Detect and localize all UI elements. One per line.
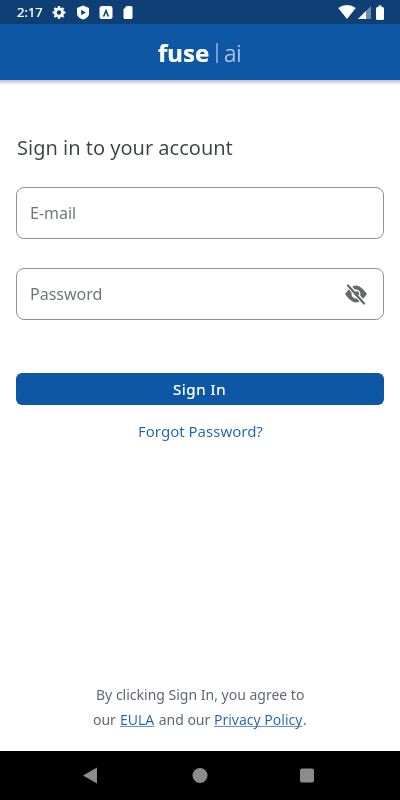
staticText: our — [93, 710, 120, 729]
staticText: Sign in to your account — [17, 134, 233, 161]
staticText: Privacy Policy — [214, 710, 303, 729]
button[interactable]: E-mail — [16, 187, 384, 239]
staticText: By clicking Sign In, you agree to — [96, 685, 305, 704]
button[interactable] — [267, 751, 400, 800]
staticText: E-mail — [30, 202, 77, 224]
staticText: ai — [224, 37, 242, 68]
staticText: Forgot Password? — [138, 421, 263, 441]
button[interactable]: Privacy Policy — [214, 710, 303, 729]
button[interactable] — [0, 751, 134, 800]
staticText: EULA — [120, 710, 155, 729]
staticText: Sign In — [173, 379, 227, 399]
staticText: fuse — [158, 36, 210, 69]
staticText: Password — [30, 283, 103, 305]
button[interactable]: Forgot Password? — [138, 421, 263, 441]
staticText: and our — [155, 710, 214, 729]
button[interactable] — [344, 282, 368, 306]
staticText: 2:17 — [17, 3, 43, 21]
button[interactable] — [134, 751, 267, 800]
button[interactable]: EULA — [120, 710, 155, 729]
staticText: . — [303, 710, 307, 729]
button[interactable]: Sign In — [16, 373, 384, 405]
button[interactable]: Password — [16, 268, 384, 320]
